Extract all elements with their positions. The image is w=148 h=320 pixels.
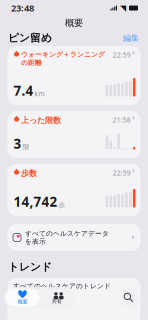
button[interactable]: 編集 [123,33,139,43]
button[interactable]: 歩数 [7,164,140,216]
button[interactable]: Search [118,287,139,308]
staticText: 22:59 [113,168,131,177]
staticText: 概要 [17,298,27,305]
button[interactable]: 共有 [39,288,73,306]
button[interactable]: すべてのヘルスケアデータ を表示 [7,224,140,251]
staticText: 23:48 [11,2,34,14]
staticText: ◥ [120,3,126,13]
button[interactable]: 上った階数 [7,111,140,158]
button[interactable]: 概要 [5,288,39,306]
staticText: 14,742 [13,193,57,210]
staticText: 3 [13,135,21,152]
staticText: 上った階数 [21,115,61,125]
staticText: km [34,89,44,98]
staticText: 22:59 [113,50,131,59]
staticText: 階 [22,143,29,151]
staticText: 歩数 [21,168,37,178]
staticText: 概要 [65,17,83,29]
staticText: ピン留め [8,31,52,44]
staticText: 21:58 [113,115,131,124]
button[interactable]: すべてのヘルスケアのトレンド [7,278,140,320]
staticText: 歩 [58,201,65,209]
staticText: トレンド [8,260,52,273]
staticText: 7.4 [13,82,33,99]
staticText: すべてのヘルスケアデータ を表示 [25,229,109,246]
staticText: 編集 [123,33,139,43]
staticText: ウォーキング＋ランニング の距離 [21,50,105,67]
button[interactable]: ウォーキング＋ランニング の距離 [7,46,140,105]
staticText: 共有 [51,298,61,305]
staticText: すべてのヘルスケアのトレンド [13,282,111,290]
